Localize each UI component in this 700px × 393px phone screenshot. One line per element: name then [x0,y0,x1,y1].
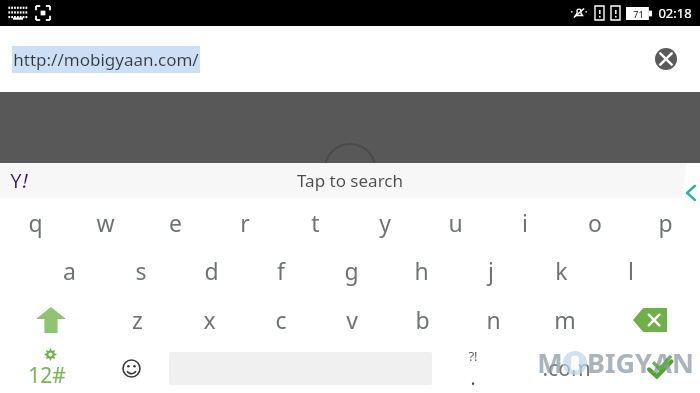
staticText: p [658,207,673,238]
staticText: b [415,304,430,335]
button[interactable]: .com [513,344,619,393]
staticText: k [555,255,568,286]
staticText: a [63,255,76,286]
staticText: http://mobigyaan.com/ [13,48,199,71]
staticText: ! [22,167,28,194]
staticText: c [275,304,287,335]
button[interactable]: m [529,295,600,344]
staticText: Y [10,167,22,194]
button[interactable]: e [140,198,210,246]
button[interactable]: r [210,198,280,246]
staticText: s [135,255,147,286]
button[interactable]: n [458,295,529,344]
button[interactable]: w [70,198,140,246]
button[interactable]: i [490,198,560,246]
button[interactable]: q [0,198,70,246]
staticText: i [522,207,528,238]
staticText: h [414,255,429,286]
button[interactable]: p [630,198,700,246]
button[interactable]: g [316,246,386,295]
button[interactable]: d [176,246,246,295]
staticText: BIGY [587,344,652,381]
button[interactable]: Backspace [600,295,700,344]
staticText: A [653,344,672,381]
button[interactable]: h [386,246,456,295]
button[interactable]: Open side panel [664,163,700,293]
staticText: w [96,207,115,238]
staticText: j [488,255,494,286]
staticText: r [240,207,250,238]
button[interactable]: l [596,246,666,295]
staticText: 12# [28,361,66,390]
button[interactable]: s [105,246,176,295]
staticText: 71 [633,8,644,20]
button[interactable]: Enter [619,344,700,393]
button[interactable]: b [387,295,458,344]
button[interactable]: o [560,198,630,246]
button[interactable]: y [350,198,420,246]
button[interactable]: f [246,246,316,295]
staticText: q [28,207,43,238]
button[interactable]: j [456,246,526,295]
button[interactable]: a [34,246,105,295]
staticText: g [344,255,359,286]
staticText: t [311,207,320,238]
staticText: l [628,255,634,286]
button[interactable]: x [173,295,245,344]
staticText: e [169,207,182,238]
button[interactable]: Shift [0,295,101,344]
staticText: 02:18 [658,4,692,22]
button[interactable]: v [316,295,387,344]
button[interactable]: Symbols and settings [0,344,94,393]
staticText: d [204,255,219,286]
staticText: z [132,304,143,335]
button[interactable]: z [101,295,173,344]
staticText: M [537,344,563,381]
staticText: N [672,344,694,381]
button[interactable]: u [420,198,490,246]
staticText: .com [542,354,591,383]
staticText: n [486,304,501,335]
staticText: Tap to search [297,169,403,192]
staticText: u [448,207,463,238]
staticText: x [203,304,216,335]
button[interactable]: Emoji [94,344,169,393]
button[interactable]: c [245,295,316,344]
button[interactable]: k [526,246,596,295]
button[interactable]: Tap to search [0,163,700,198]
button[interactable]: ?! [432,344,513,393]
staticText: m [554,304,576,335]
button[interactable]: Clear text [648,41,684,77]
staticText: y [379,207,391,238]
button[interactable]: http://mobigyaan.com/ [0,26,700,92]
button[interactable]: t [280,198,350,246]
staticText: o [588,207,602,238]
staticText: . [470,365,476,391]
staticText: f [277,255,285,286]
staticText: ?! [468,347,478,365]
staticText: v [346,304,358,335]
